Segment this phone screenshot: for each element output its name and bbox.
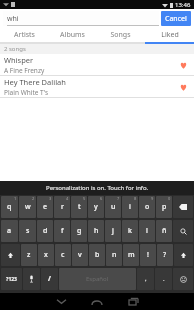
staticText: Hey There Dalilah bbox=[4, 77, 66, 87]
button[interactable]: ? bbox=[157, 244, 173, 266]
button[interactable]: k bbox=[122, 220, 138, 242]
button[interactable]: Songs bbox=[96, 28, 145, 42]
staticText: t bbox=[78, 202, 81, 212]
staticText: s bbox=[26, 226, 30, 236]
staticText: . bbox=[163, 275, 165, 283]
button[interactable]: c bbox=[55, 244, 71, 266]
button[interactable]: Shift bbox=[174, 244, 193, 266]
button[interactable]: Emoji bbox=[173, 268, 193, 290]
button[interactable]: u bbox=[105, 196, 121, 218]
staticText: ñ bbox=[162, 226, 167, 236]
staticText: e bbox=[43, 202, 48, 212]
button[interactable]: i bbox=[122, 196, 138, 218]
staticText: Cancel bbox=[165, 14, 187, 24]
staticText: Liked bbox=[161, 30, 179, 40]
staticText: ! bbox=[147, 250, 149, 260]
button[interactable]: Voice input bbox=[23, 268, 40, 290]
staticText: Personalization is on. Touch for info. bbox=[46, 184, 149, 192]
button[interactable]: v bbox=[72, 244, 88, 266]
staticText: Songs bbox=[110, 30, 131, 40]
button[interactable]: ?123 bbox=[1, 268, 22, 290]
button[interactable]: Shift bbox=[1, 244, 20, 266]
staticText: 5 bbox=[83, 196, 86, 201]
staticText: g bbox=[77, 226, 82, 236]
staticText: , bbox=[145, 275, 147, 283]
button[interactable]: ! bbox=[140, 244, 156, 266]
button[interactable]: f bbox=[54, 220, 70, 242]
staticText: k bbox=[128, 226, 132, 236]
staticText: 7 bbox=[117, 196, 120, 201]
button[interactable]: Recents bbox=[115, 293, 151, 310]
button[interactable]: Whisper bbox=[0, 54, 194, 75]
button[interactable]: x bbox=[38, 244, 54, 266]
staticText: z bbox=[27, 250, 31, 260]
button[interactable]: a bbox=[1, 220, 18, 242]
button[interactable]: m bbox=[123, 244, 139, 266]
staticText: b bbox=[95, 250, 100, 260]
button[interactable]: s bbox=[19, 220, 36, 242]
staticText: v bbox=[78, 250, 82, 260]
button[interactable]: o bbox=[139, 196, 155, 218]
button[interactable]: l bbox=[139, 220, 155, 242]
button[interactable]: Backspace bbox=[173, 196, 193, 218]
button[interactable]: Personalization is on. Touch for info. bbox=[0, 181, 194, 195]
staticText: m bbox=[128, 250, 135, 260]
button[interactable]: h bbox=[88, 220, 104, 242]
staticText: Albums bbox=[60, 30, 85, 40]
staticText: / bbox=[48, 274, 51, 284]
staticText: j bbox=[112, 226, 114, 236]
button[interactable]: Search bbox=[173, 220, 193, 242]
button[interactable]: g bbox=[71, 220, 87, 242]
staticText: ? bbox=[163, 250, 167, 260]
button[interactable]: e bbox=[37, 196, 53, 218]
staticText: p bbox=[162, 202, 167, 212]
button[interactable]: ñ bbox=[156, 220, 172, 242]
staticText: a bbox=[7, 226, 12, 236]
staticText: Español bbox=[86, 275, 109, 283]
button[interactable]: Unlike bbox=[176, 58, 190, 72]
button[interactable]: , bbox=[137, 268, 154, 290]
button[interactable]: q bbox=[1, 196, 18, 218]
button[interactable]: Back bbox=[43, 293, 79, 310]
staticText: q bbox=[7, 202, 12, 212]
staticText: c bbox=[61, 250, 65, 260]
staticText: whi bbox=[7, 14, 19, 24]
staticText: i bbox=[129, 202, 131, 212]
staticText: 1 bbox=[14, 196, 17, 201]
button[interactable]: d bbox=[37, 220, 53, 242]
button[interactable]: Unlike bbox=[176, 80, 190, 94]
staticText: 6 bbox=[100, 196, 103, 201]
staticText: 2 bbox=[32, 196, 35, 201]
staticText: 4 bbox=[66, 196, 69, 201]
button[interactable]: y bbox=[88, 196, 104, 218]
staticText: y bbox=[94, 202, 98, 212]
button[interactable]: Cancel bbox=[161, 11, 191, 26]
button[interactable]: z bbox=[21, 244, 37, 266]
button[interactable]: w bbox=[19, 196, 36, 218]
button[interactable]: t bbox=[71, 196, 87, 218]
button[interactable]: whi bbox=[3, 11, 159, 26]
button[interactable]: p bbox=[156, 196, 172, 218]
staticText: 0 bbox=[168, 196, 171, 201]
staticText: 2 songs bbox=[4, 45, 26, 53]
staticText: A Fine Frenzy bbox=[4, 66, 45, 75]
staticText: Whisper bbox=[4, 55, 34, 65]
staticText: r bbox=[61, 202, 64, 212]
button[interactable]: b bbox=[89, 244, 105, 266]
staticText: l bbox=[146, 226, 148, 236]
button[interactable]: j bbox=[105, 220, 121, 242]
button[interactable]: . bbox=[155, 268, 172, 290]
button[interactable]: Liked bbox=[145, 28, 194, 42]
staticText: ?123 bbox=[6, 276, 17, 283]
button[interactable]: Artists bbox=[0, 28, 48, 42]
staticText: 8 bbox=[134, 196, 137, 201]
button[interactable]: Hey There Dalilah bbox=[0, 76, 194, 97]
button[interactable]: Home bbox=[79, 293, 115, 310]
staticText: d bbox=[43, 226, 48, 236]
staticText: 13:46 bbox=[175, 1, 191, 9]
button[interactable]: n bbox=[106, 244, 122, 266]
button[interactable]: Albums bbox=[48, 28, 96, 42]
button[interactable]: / bbox=[41, 268, 58, 290]
button[interactable]: r bbox=[54, 196, 70, 218]
